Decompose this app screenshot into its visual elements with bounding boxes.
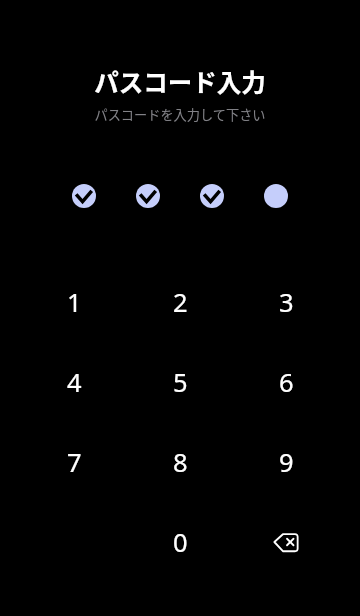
button[interactable]: 5 [127,342,233,422]
staticText: 2 [173,285,188,320]
button[interactable]: 0 [127,502,233,582]
staticText: 8 [173,445,188,480]
staticText: 7 [67,445,82,480]
staticText: 0 [173,525,188,560]
staticText: 9 [279,445,294,480]
staticText: パスコード入力 [94,64,266,99]
button[interactable]: 9 [233,422,339,502]
button[interactable]: 8 [127,422,233,502]
button[interactable]: 4 [21,342,127,422]
staticText: パスコードを入力して下さい [94,105,266,124]
staticText: 4 [67,365,82,400]
staticText: 5 [173,365,188,400]
staticText: 6 [279,365,294,400]
button[interactable]: 7 [21,422,127,502]
button[interactable]: 3 [233,262,339,342]
button[interactable]: 1 [21,262,127,342]
staticText: 1 [67,285,82,320]
button[interactable]: 6 [233,342,339,422]
button[interactable]: Backspace [233,502,339,582]
button[interactable]: 2 [127,262,233,342]
staticText: 3 [279,285,294,320]
